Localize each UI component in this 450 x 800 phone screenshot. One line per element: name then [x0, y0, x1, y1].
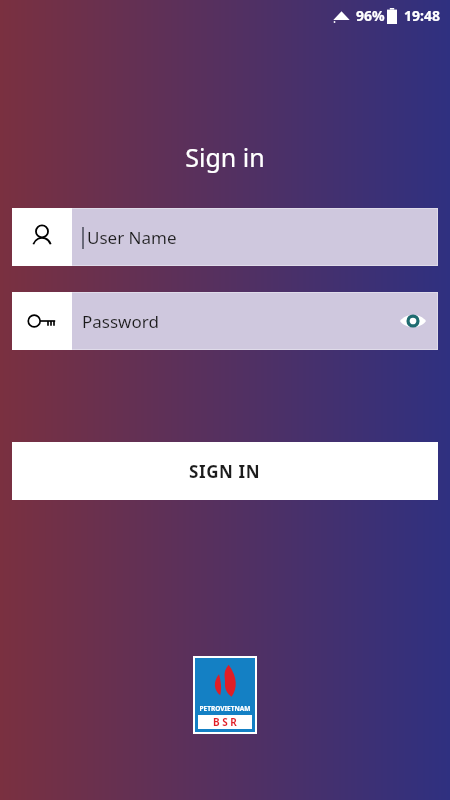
button[interactable]: Password: [12, 292, 438, 350]
staticText: Password: [82, 310, 159, 333]
staticText: PETROVIETNAM: [195, 704, 255, 713]
button[interactable]: SIGN IN: [12, 442, 438, 500]
staticText: B S R: [213, 715, 237, 729]
staticText: Sign in: [0, 140, 450, 174]
other: PetroVietnam BSR logo: [195, 658, 255, 732]
button[interactable]: User Name: [12, 208, 438, 266]
button[interactable]: Show password: [390, 298, 436, 344]
staticText: 96%: [356, 6, 385, 25]
staticText: User Name: [87, 226, 177, 249]
staticText: SIGN IN: [189, 460, 261, 483]
staticText: 19:48: [404, 6, 440, 25]
